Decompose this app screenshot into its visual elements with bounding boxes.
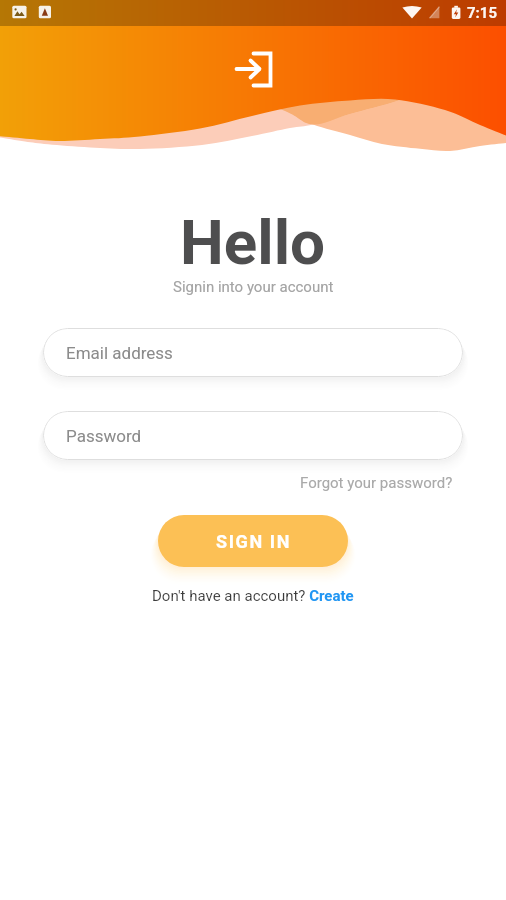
staticText: Email address [66,343,173,363]
staticText: 7:15 [467,4,498,22]
button[interactable]: Don't have an account? Create [152,587,354,605]
staticText: SIGN IN [216,531,291,552]
staticText: Don't have an account? Create [152,587,354,605]
button[interactable]: Login [230,46,276,92]
button[interactable]: Password [43,411,463,460]
staticText: Password [66,426,142,446]
button[interactable]: Email address [43,328,463,377]
staticText: Signin into your account [173,278,334,296]
staticText: Hello [180,206,326,279]
staticText: Forgot your password? [300,474,453,492]
button[interactable]: Forgot your password? [300,474,453,492]
button[interactable]: SIGN IN [158,515,348,567]
